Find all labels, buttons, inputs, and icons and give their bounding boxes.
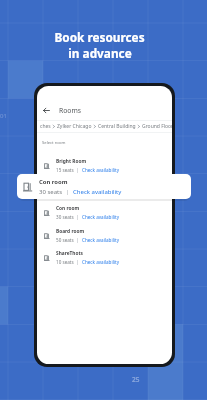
staticText: Central Building <box>98 123 136 130</box>
staticText: Ground Floor <box>142 123 172 130</box>
staticText: 30 seats <box>56 214 74 220</box>
staticText: Rooms <box>59 106 82 115</box>
staticText: Con room <box>39 178 68 186</box>
staticText: ches <box>40 123 51 130</box>
staticText: Bright Room <box>56 158 87 165</box>
button[interactable]: ShareThots <box>37 248 172 267</box>
staticText: | <box>63 188 73 196</box>
staticText: Check availability <box>82 167 120 173</box>
staticText: Check availability <box>73 188 122 196</box>
staticText: 10 seats <box>56 259 74 265</box>
staticText: 30 seats <box>39 188 63 196</box>
button[interactable]: Board room <box>37 226 172 245</box>
staticText: Board room <box>56 228 85 235</box>
staticText: 25 <box>132 375 140 384</box>
staticText: Book resources <box>54 29 145 45</box>
staticText: Check availability <box>82 237 120 243</box>
staticText: Check availability <box>82 214 120 220</box>
staticText: | <box>74 167 82 173</box>
staticText: Select room <box>42 140 66 146</box>
staticText: | <box>74 259 82 265</box>
button[interactable]: Con room <box>17 174 191 199</box>
staticText: Con room <box>56 205 80 212</box>
staticText: | <box>74 214 82 220</box>
button[interactable]: Bright Room <box>37 156 172 175</box>
staticText: 15 seats <box>56 167 74 173</box>
staticText: ShareThots <box>56 250 83 257</box>
staticText: Check availability <box>82 259 120 265</box>
staticText: Zylker Chicago <box>57 123 92 130</box>
staticText: 01 <box>0 112 7 120</box>
button[interactable]: Con room <box>37 203 172 222</box>
button[interactable]: Back <box>41 105 52 116</box>
staticText: in advance <box>68 45 132 61</box>
staticText: | <box>74 237 82 243</box>
staticText: 50 seats <box>56 237 74 243</box>
